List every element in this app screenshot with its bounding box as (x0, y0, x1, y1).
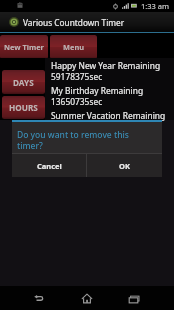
staticText: My Birthday Remaining (51, 85, 144, 96)
staticText: 13650735sec (51, 96, 103, 107)
staticText: OK (119, 161, 130, 171)
button[interactable]: DAYS (2, 70, 45, 94)
button[interactable]: Cancel (12, 154, 86, 177)
button[interactable]: Back (28, 288, 48, 308)
staticText: Cancel (37, 161, 62, 171)
staticText: Summer Vacation Remaining (51, 110, 166, 121)
button[interactable]: HOURS (2, 96, 45, 119)
button[interactable]: New Timer (0, 35, 48, 59)
button[interactable]: Home (77, 288, 97, 308)
staticText: Do you want to remove this timer? (17, 129, 129, 151)
staticText: 1:33 am (141, 1, 170, 11)
staticText: Menu (63, 42, 84, 52)
staticText: New Timer (4, 42, 44, 52)
staticText: DAYS (13, 77, 34, 88)
button[interactable]: OK (87, 154, 162, 177)
staticText: HOURS (9, 102, 38, 113)
staticText: 59178375sec (51, 71, 103, 82)
staticText: Happy New Year Remaining (51, 60, 161, 71)
button[interactable]: Recents (124, 289, 144, 309)
staticText: Various Countdown Timer (23, 17, 125, 28)
button[interactable]: Menu (50, 35, 97, 59)
